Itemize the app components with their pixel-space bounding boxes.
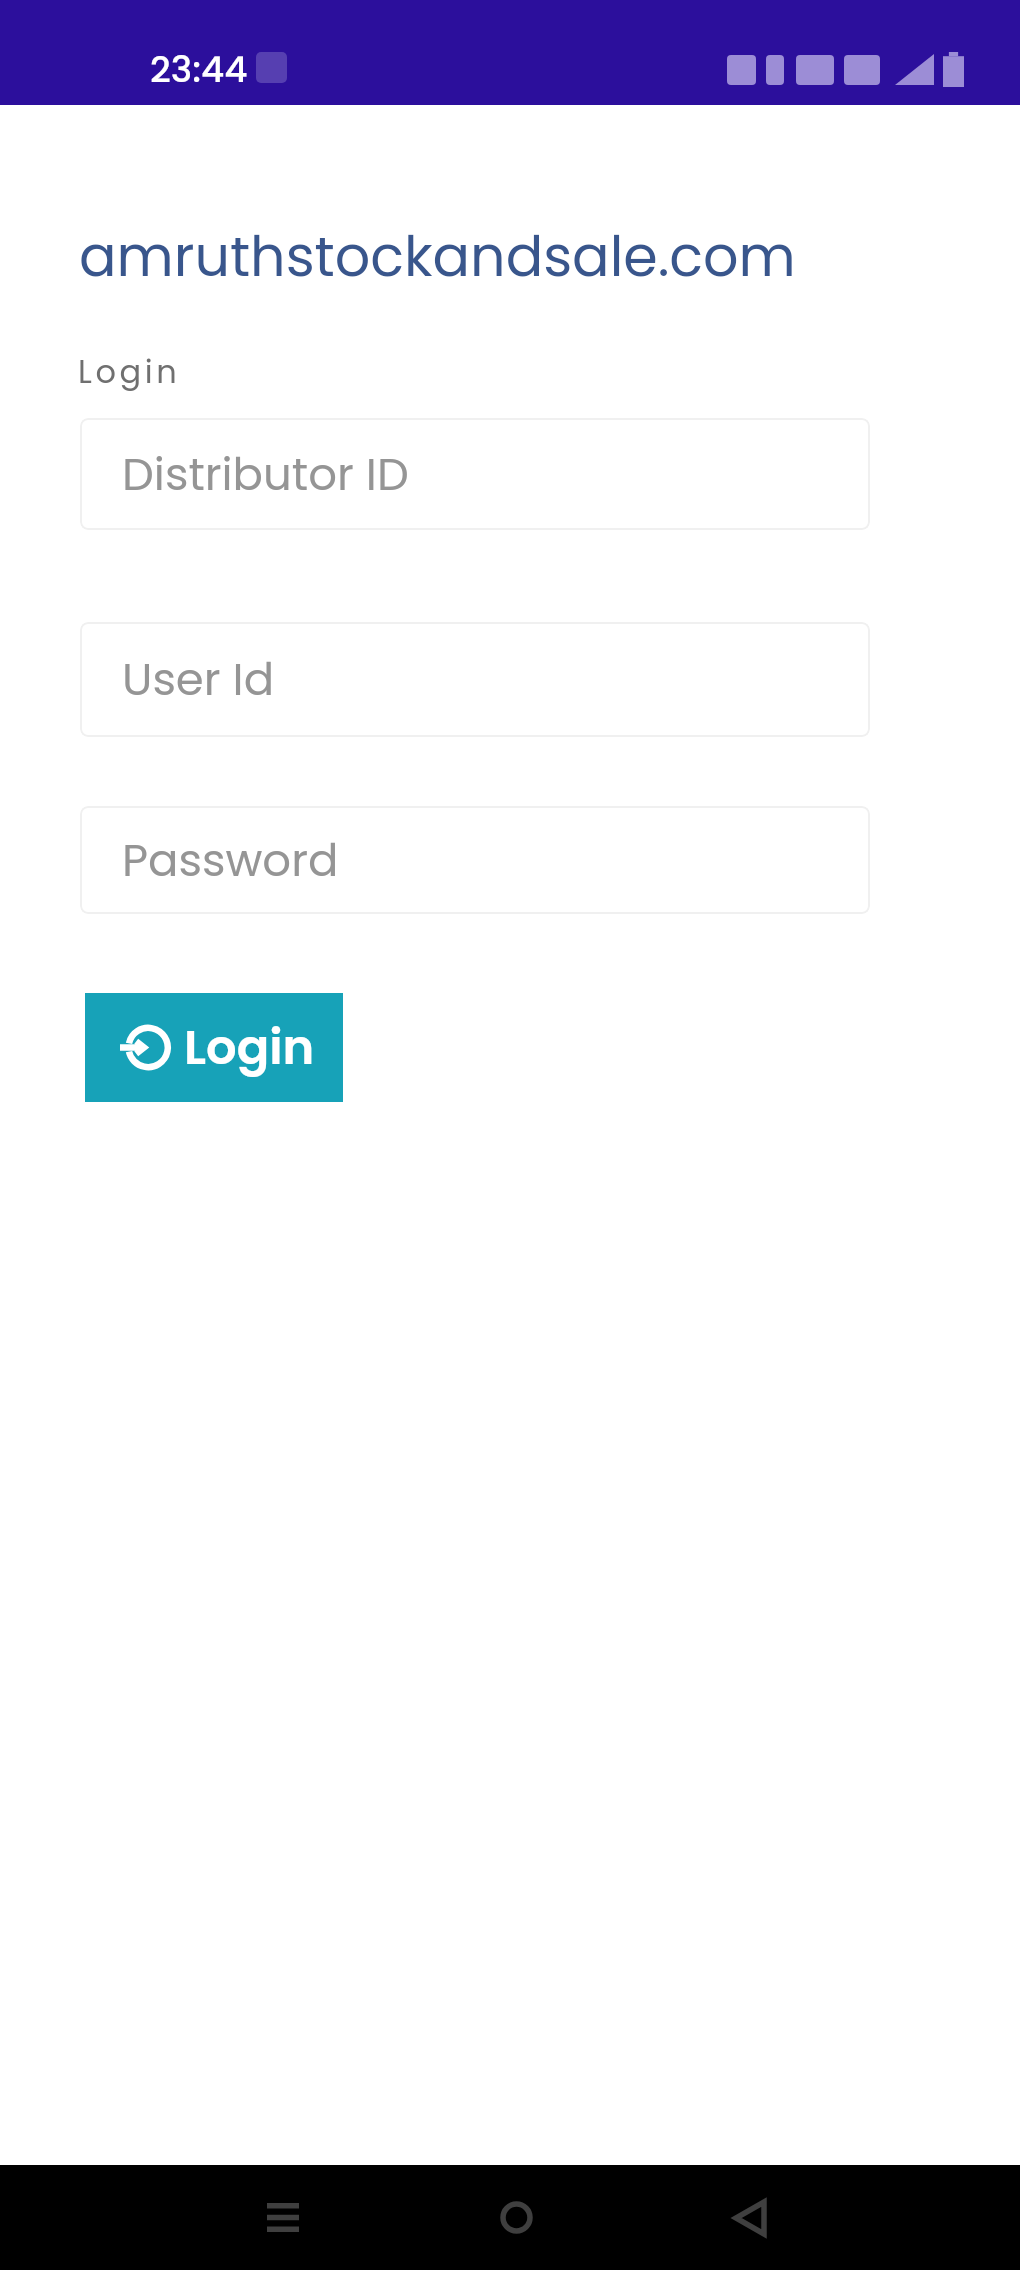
button[interactable]: User Id: [80, 622, 870, 737]
button[interactable]: Login: [85, 993, 343, 1102]
staticText: Login: [184, 1014, 315, 1081]
staticText: amruthstockandsale.com: [79, 218, 796, 296]
button[interactable]: Recent apps: [228, 2165, 338, 2270]
button[interactable]: Password: [80, 806, 870, 914]
button[interactable]: Back: [695, 2165, 805, 2270]
button[interactable]: Distributor ID: [80, 418, 870, 530]
staticText: Password: [122, 829, 339, 892]
staticText: Distributor ID: [122, 443, 409, 506]
staticText: User Id: [122, 648, 275, 711]
staticText: 23:44: [150, 44, 248, 94]
staticText: Login: [78, 349, 181, 394]
button[interactable]: Home: [461, 2165, 571, 2270]
